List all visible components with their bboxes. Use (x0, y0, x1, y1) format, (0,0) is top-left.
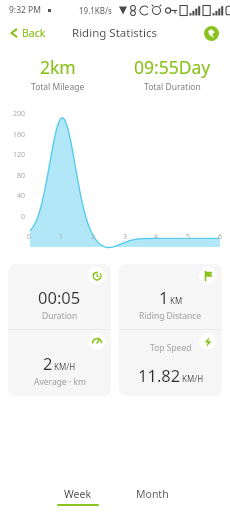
button[interactable]: 09:55Day (115, 54, 230, 94)
button[interactable]: 2km (0, 54, 115, 94)
staticText: 0 (21, 212, 26, 222)
staticText: 120 (13, 150, 26, 160)
staticText: 40 (17, 191, 26, 201)
staticText: KM/H (54, 361, 76, 372)
button[interactable]: Top Speed (119, 330, 222, 396)
staticText: Back (22, 26, 46, 40)
staticText: 4 (154, 232, 159, 242)
button[interactable]: Back (5, 23, 50, 43)
staticText: 200 (13, 109, 26, 119)
staticText: Riding Distance (139, 310, 202, 322)
staticText: Average · km (34, 376, 86, 388)
staticText: 19.1KB/s (79, 5, 112, 16)
button[interactable]: 1 (119, 264, 222, 329)
button[interactable]: 2 (8, 330, 111, 396)
staticText: Total Duration (144, 81, 201, 93)
staticText: 2 (91, 232, 96, 242)
staticText: 9:32 PM (9, 4, 41, 16)
staticText: Riding Statistics (72, 25, 158, 41)
staticText: 160 (13, 130, 26, 140)
staticText: 80 (17, 171, 26, 181)
button[interactable]: Month (115, 487, 189, 506)
staticText: 2 (43, 352, 53, 374)
staticText: 0 (27, 232, 32, 242)
staticText: 09:55Day (134, 55, 211, 79)
staticText: 11.82 (138, 364, 181, 386)
staticText: 00:05 (38, 286, 81, 308)
staticText: Duration (42, 310, 78, 322)
button[interactable]: Map (200, 22, 222, 44)
staticText: 6 (218, 232, 223, 242)
staticText: 2km (40, 55, 76, 79)
staticText: KM (170, 295, 183, 306)
staticText: Total Mileage (31, 81, 85, 93)
button[interactable]: 00:05 (8, 264, 111, 329)
staticText: 5 (186, 232, 191, 242)
button[interactable]: Week (41, 487, 115, 506)
staticText: KM/H (182, 373, 204, 384)
staticText: 3 (123, 232, 128, 242)
staticText: 1 (159, 286, 169, 308)
staticText: Top Speed (150, 342, 192, 354)
staticText: Month (136, 487, 169, 501)
staticText: Week (64, 487, 92, 501)
staticText: 1 (59, 232, 64, 242)
